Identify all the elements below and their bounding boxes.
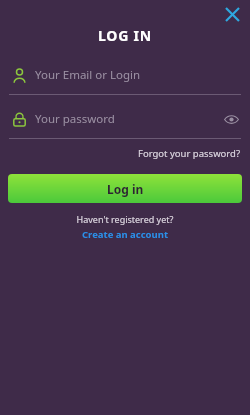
button[interactable]: Your password xyxy=(0,105,250,133)
button[interactable]: Forgot your password? xyxy=(129,145,250,162)
staticText: LOG IN xyxy=(0,26,250,45)
button[interactable]: Create an account xyxy=(76,227,175,242)
button[interactable]: Your Email or Login xyxy=(0,61,250,89)
button[interactable]: Log in xyxy=(8,174,242,203)
staticText: Create an account xyxy=(82,228,169,241)
button[interactable]: Show password xyxy=(220,108,242,130)
staticText: Your Email or Login xyxy=(35,67,141,83)
staticText: Log in xyxy=(107,181,144,197)
staticText: Forgot your password? xyxy=(138,147,241,160)
button[interactable]: Close xyxy=(220,2,244,26)
staticText: Haven't registered yet? xyxy=(0,213,250,225)
staticText: Your password xyxy=(35,111,220,127)
